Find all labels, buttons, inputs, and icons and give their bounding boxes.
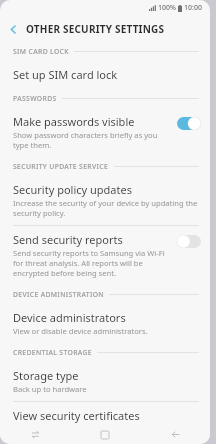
staticText: 10:00 <box>184 3 202 13</box>
button[interactable]: View security certificates <box>0 402 210 441</box>
staticText: SIM CARD LOCK <box>13 47 69 56</box>
staticText: OTHER SECURITY SETTINGS <box>26 22 165 36</box>
staticText: View or disable device administrators. <box>13 326 148 336</box>
staticText: Storage type <box>13 368 79 383</box>
button[interactable]: Send security reports <box>0 226 210 285</box>
staticText: Display trusted CA certificates. <box>13 424 122 434</box>
staticText: PASSWORDS <box>13 94 57 103</box>
button[interactable]: Make passwords visible <box>0 108 210 157</box>
staticText: SECURITY UPDATE SERVICE <box>13 162 109 171</box>
staticText: Send security reports <box>13 232 123 247</box>
staticText: Back up to hardware <box>13 384 87 394</box>
staticText: DEVICE ADMINISTRATION <box>13 290 104 299</box>
staticText: Set up SIM card lock <box>13 67 118 82</box>
staticText: View security certificates <box>13 408 140 423</box>
button[interactable]: Security policy updates <box>0 176 210 225</box>
button[interactable]: Toggle Send security reports <box>177 235 201 248</box>
staticText: Send security reports to Samsung via Wi-… <box>13 248 171 278</box>
button[interactable]: Navigate up <box>0 16 26 42</box>
staticText: Increase the security of your device by … <box>13 198 201 218</box>
button[interactable]: Back <box>140 425 210 444</box>
button[interactable]: Toggle Make passwords visible <box>177 117 201 130</box>
button[interactable]: Device administrators <box>0 304 210 343</box>
button[interactable]: Set up SIM card lock <box>0 61 210 89</box>
button[interactable]: Home <box>70 425 140 444</box>
staticText: Device administrators <box>13 310 126 325</box>
staticText: Show password characters briefly as you … <box>13 130 171 150</box>
button[interactable]: Recents <box>0 425 70 444</box>
staticText: Security policy updates <box>13 182 132 197</box>
staticText: CREDENTIAL STORAGE <box>13 348 92 357</box>
staticText: 100% <box>158 3 176 13</box>
button[interactable]: Storage type <box>0 362 210 401</box>
staticText: Make passwords visible <box>13 114 135 129</box>
